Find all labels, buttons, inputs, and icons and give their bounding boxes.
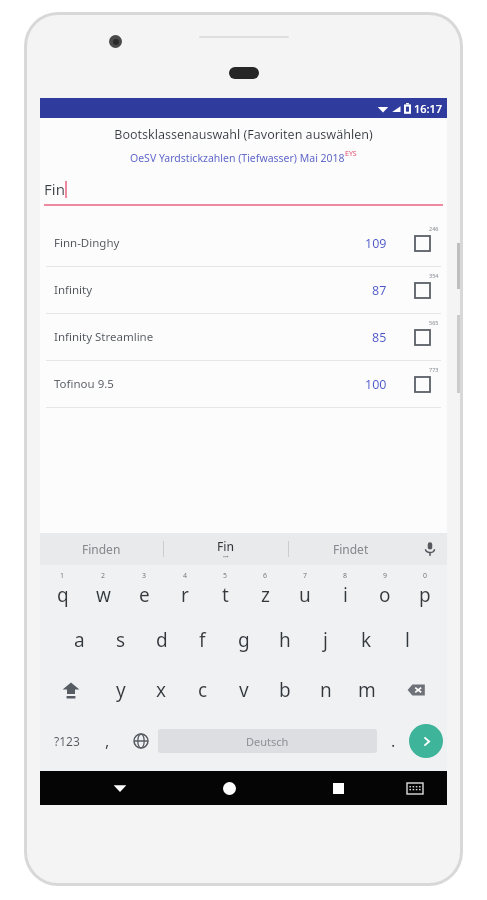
staticText: Infinity Streamline	[54, 329, 372, 345]
button[interactable]: Sprache wechseln	[124, 715, 158, 767]
staticText: l	[405, 627, 410, 653]
staticText: 1	[60, 571, 65, 581]
staticText: s	[116, 627, 126, 653]
staticText: o	[379, 582, 391, 608]
staticText: v	[239, 677, 249, 703]
staticText: Tofinou 9.5	[54, 376, 365, 392]
staticText: y	[116, 677, 126, 703]
button[interactable]: a	[59, 615, 100, 665]
button[interactable]: 0	[405, 565, 445, 615]
button[interactable]: Zurück	[98, 771, 142, 805]
staticText: n	[320, 677, 332, 703]
staticText: w	[96, 582, 111, 608]
button[interactable]: Tastatur ausblenden	[396, 771, 434, 805]
staticText: b	[279, 677, 291, 703]
staticText: 16:17	[414, 101, 443, 116]
button[interactable]: m	[346, 665, 387, 715]
staticText: g	[238, 627, 250, 653]
button[interactable]: Favorit Finn-Dinghy	[405, 223, 439, 263]
staticText: k	[361, 627, 372, 653]
button[interactable]: Tofinou 9.5	[40, 361, 447, 407]
staticText: q	[57, 582, 69, 608]
staticText: Finn-Dinghy	[54, 235, 365, 251]
button[interactable]: b	[264, 665, 305, 715]
button[interactable]: k	[346, 615, 387, 665]
button[interactable]: 3	[124, 565, 165, 615]
button[interactable]: d	[141, 615, 182, 665]
button[interactable]: 6	[245, 565, 285, 615]
button[interactable]: Finn-Dinghy	[40, 220, 447, 266]
button[interactable]: Löschen	[387, 665, 445, 715]
button[interactable]: v	[223, 665, 264, 715]
button[interactable]: 9	[365, 565, 405, 615]
staticText: m	[358, 677, 376, 703]
button[interactable]: s	[100, 615, 141, 665]
button[interactable]: Spracheingabe	[413, 533, 447, 565]
button[interactable]: j	[305, 615, 346, 665]
staticText: 5	[223, 571, 228, 581]
button[interactable]: 7	[285, 565, 325, 615]
button[interactable]: Findet	[289, 533, 413, 565]
button[interactable]: Infinity	[40, 267, 447, 313]
staticText: Finden	[82, 541, 121, 557]
staticText: i	[343, 582, 348, 608]
staticText: 9	[383, 571, 388, 581]
staticText: 109	[365, 235, 387, 252]
staticText: 7	[303, 571, 308, 581]
staticText: x	[156, 677, 167, 703]
staticText: EYS	[345, 149, 357, 159]
button[interactable]: Startbildschirm	[207, 771, 251, 805]
button[interactable]: .	[377, 715, 409, 767]
button[interactable]: y	[100, 665, 141, 715]
button[interactable]: Suchen	[409, 724, 443, 758]
staticText: e	[139, 582, 150, 608]
staticText: Fin	[217, 538, 235, 554]
staticText: ?123	[54, 733, 80, 749]
staticText: 85	[372, 329, 387, 346]
button[interactable]: f	[182, 615, 223, 665]
staticText: •••	[223, 554, 229, 561]
button[interactable]: Deutsch	[158, 729, 377, 753]
button[interactable]: Fin	[164, 533, 288, 565]
button[interactable]: 5	[205, 565, 245, 615]
button[interactable]: Übersicht	[316, 771, 360, 805]
button[interactable]: Umschalt	[42, 665, 100, 715]
button[interactable]: Favorit Infinity	[405, 270, 439, 310]
staticText: 4	[183, 571, 188, 581]
button[interactable]: h	[264, 615, 305, 665]
staticText: 2	[101, 571, 106, 581]
button[interactable]: ?123	[44, 715, 90, 767]
button[interactable]: 4	[165, 565, 205, 615]
staticText: 246	[429, 225, 439, 232]
staticText: j	[323, 627, 328, 653]
staticText: ,	[105, 730, 110, 752]
button[interactable]: Favorit Tofinou 9.5	[405, 364, 439, 404]
button[interactable]: g	[223, 615, 264, 665]
staticText: p	[419, 582, 431, 608]
staticText: Bootsklassenauswahl (Favoriten auswählen…	[40, 126, 447, 143]
button[interactable]: n	[305, 665, 346, 715]
button[interactable]: c	[182, 665, 223, 715]
button[interactable]: l	[387, 615, 428, 665]
button[interactable]: 8	[325, 565, 365, 615]
staticText: d	[156, 627, 168, 653]
staticText: Infinity	[54, 282, 372, 298]
staticText: t	[222, 582, 229, 608]
staticText: .	[391, 730, 396, 752]
button[interactable]: Finden	[40, 533, 163, 565]
staticText: 0	[423, 571, 428, 581]
staticText: c	[198, 677, 208, 703]
button[interactable]: x	[141, 665, 182, 715]
button[interactable]: Favorit Infinity Streamline	[405, 317, 439, 357]
button[interactable]: 2	[83, 565, 124, 615]
staticText: z	[261, 582, 270, 608]
button[interactable]: ,	[90, 715, 124, 767]
staticText: Findet	[333, 541, 369, 557]
staticText: Fin	[44, 179, 65, 199]
staticText: 565	[429, 319, 439, 326]
staticText: 354	[429, 272, 439, 279]
button[interactable]: Infinity Streamline	[40, 314, 447, 360]
staticText: h	[279, 627, 291, 653]
staticText: OeSV Yardstickzahlen (Tiefwasser) Mai 20…	[130, 151, 345, 165]
button[interactable]: 1	[42, 565, 83, 615]
